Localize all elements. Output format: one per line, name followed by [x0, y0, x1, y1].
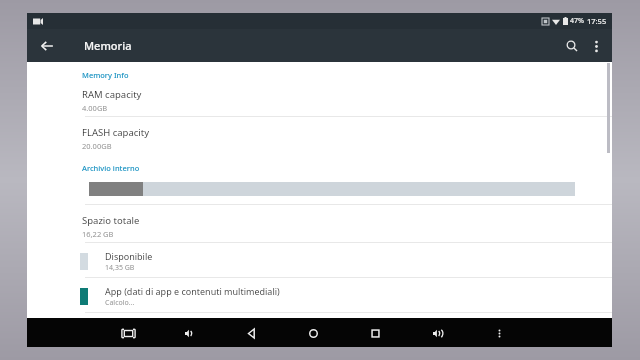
staticText: 16,22 GB — [82, 229, 114, 239]
staticText: Calcolo... — [105, 298, 135, 308]
button[interactable]: FLASH capacity — [27, 124, 612, 154]
staticText: 17:55 — [587, 16, 607, 26]
button[interactable]: Recent apps — [362, 320, 388, 346]
button[interactable]: More options — [486, 320, 512, 346]
staticText: 47% — [570, 16, 584, 26]
button[interactable]: Volume up — [424, 320, 450, 346]
button[interactable]: Home — [300, 320, 326, 346]
button[interactable]: Search — [559, 33, 585, 59]
staticText: Memoria — [84, 38, 132, 53]
button[interactable]: Spazio totale — [27, 212, 612, 242]
button[interactable]: Back — [238, 320, 264, 346]
button[interactable]: Back — [33, 32, 61, 60]
staticText: FLASH capacity — [82, 126, 150, 139]
button[interactable]: RAM capacity — [27, 86, 612, 116]
staticText: App (dati di app e contenuti multimedial… — [105, 285, 280, 297]
button[interactable]: App (dati di app e contenuti multimedial… — [27, 281, 612, 312]
button[interactable]: More options — [585, 35, 607, 57]
staticText: Disponibile — [105, 250, 153, 262]
button[interactable]: Screenshot — [115, 320, 141, 346]
staticText: 4.00GB — [82, 103, 108, 113]
staticText: Memory Info — [82, 70, 129, 80]
staticText: RAM capacity — [82, 88, 142, 101]
staticText: Spazio totale — [82, 214, 140, 227]
staticText: 14,35 GB — [105, 263, 135, 273]
button[interactable]: Volume down — [176, 320, 202, 346]
staticText: Archivio interno — [82, 163, 140, 173]
button[interactable]: Disponibile — [27, 246, 612, 277]
staticText: 20.00GB — [82, 141, 112, 151]
